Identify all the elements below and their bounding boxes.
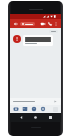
button[interactable] [13, 35, 53, 46]
button[interactable]: Send [53, 99, 58, 104]
button[interactable]: Navigate up [12, 20, 19, 27]
button[interactable]: Recent apps [47, 114, 54, 121]
button[interactable]: Camera [13, 106, 19, 112]
button[interactable]: Home [32, 114, 39, 121]
button[interactable]: More options [53, 21, 59, 27]
button[interactable]: Back [18, 114, 25, 121]
button[interactable]: Emoji [31, 106, 37, 112]
button[interactable] [49, 30, 58, 33]
button[interactable]: Gallery [22, 106, 28, 112]
button[interactable]: Call [46, 20, 53, 27]
button[interactable]: More attachments [40, 106, 46, 112]
button[interactable] [20, 22, 35, 26]
button[interactable]: Send [10, 98, 61, 105]
button[interactable]: Video call [39, 20, 46, 27]
